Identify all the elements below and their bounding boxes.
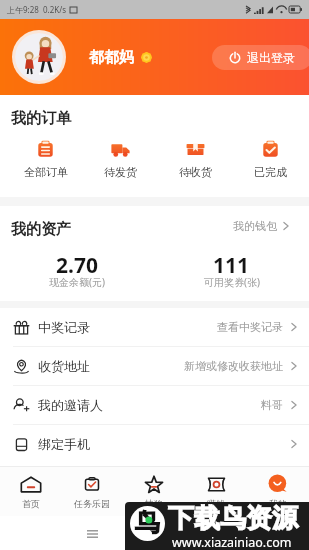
staticText: 都都妈 (89, 48, 134, 67)
staticText: 2.70 (56, 251, 98, 280)
staticText: 0.2K/s (43, 4, 67, 15)
staticText: 中奖记录 (38, 319, 90, 335)
staticText: 我的资产 (11, 220, 71, 239)
button[interactable]: 我的邀请人 (0, 386, 309, 424)
staticText: 鸟 (135, 507, 160, 538)
staticText: 查看中奖记录 (217, 320, 283, 334)
button[interactable]: 中奖记录 (0, 308, 309, 346)
button[interactable]: 抽奖 (123, 475, 185, 509)
staticText: 111 (213, 251, 250, 280)
staticText: 任务乐园 (74, 498, 110, 509)
staticText: 可用奖券(张) (204, 275, 260, 289)
staticText: 我的钱包 (233, 219, 277, 233)
staticText: 现金余额(元) (49, 275, 105, 289)
staticText: www.xiazainiao.com (172, 534, 292, 550)
staticText: 已完成 (254, 165, 287, 179)
staticText: 抽奖 (145, 498, 163, 509)
staticText: 全部订单 (24, 165, 68, 179)
staticText: 收货地址 (38, 358, 90, 374)
staticText: 首页 (22, 498, 40, 509)
button[interactable]: 我的 (247, 475, 309, 509)
button[interactable]: 111 (154, 251, 309, 294)
button[interactable]: 待收货 (158, 140, 233, 179)
staticText: 下载鸟资源 (168, 502, 298, 535)
staticText: 我的邀请人 (38, 397, 103, 413)
staticText: 上午9:28 (7, 4, 39, 15)
staticText: 退出登录 (247, 50, 295, 65)
button[interactable]: Profile photo (12, 30, 66, 84)
button[interactable]: 收货地址 (0, 347, 309, 385)
button[interactable]: 任务乐园 (61, 475, 123, 509)
staticText: 料哥 (261, 398, 283, 412)
button[interactable]: 退出登录 (212, 45, 309, 70)
button[interactable]: 首页 (0, 475, 61, 509)
button[interactable]: 待发货 (83, 140, 158, 179)
staticText: 待收货 (179, 165, 212, 179)
button[interactable]: 2.70 (0, 251, 154, 294)
staticText: 赚钱 (207, 498, 225, 509)
button[interactable]: 我的钱包 (233, 219, 309, 233)
staticText: 我的订单 (11, 109, 71, 128)
button[interactable]: 绑定手机 (0, 425, 309, 463)
staticText: 绑定手机 (38, 436, 90, 452)
button[interactable]: 已完成 (233, 140, 308, 179)
staticText: 待发货 (104, 165, 137, 179)
staticText: 我的 (269, 498, 287, 509)
button[interactable]: 全部订单 (8, 140, 83, 179)
staticText: 新增或修改收获地址 (184, 359, 283, 373)
button[interactable]: 赚钱 (185, 475, 247, 509)
